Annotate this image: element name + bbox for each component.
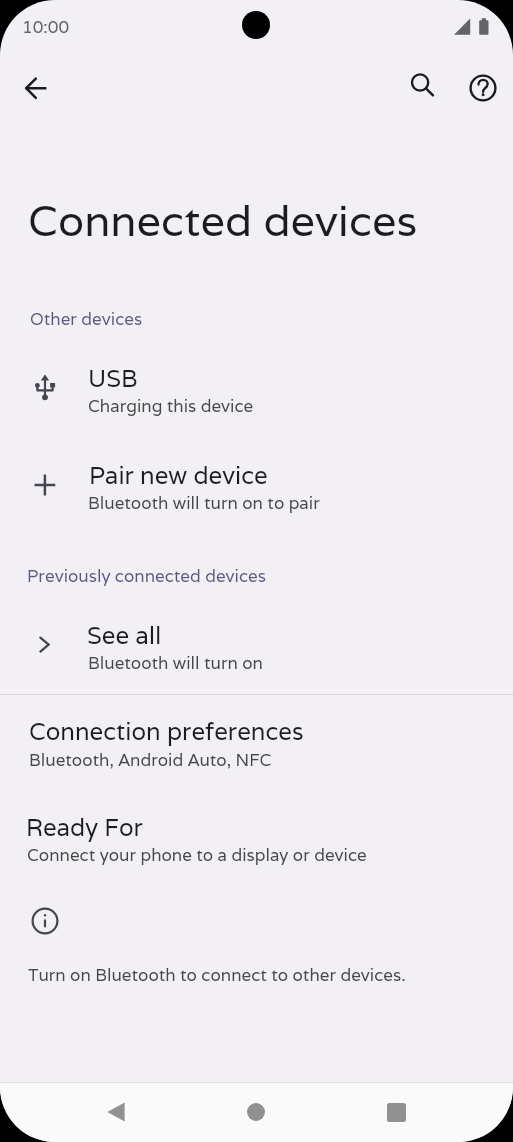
staticText: Ready For (26, 812, 143, 843)
staticText: Connection preferences (29, 716, 304, 747)
staticText: Connected devices (28, 192, 418, 248)
staticText: Charging this device (88, 395, 254, 417)
button[interactable]: Back (13, 64, 61, 112)
staticText: Bluetooth, Android Auto, NFC (29, 749, 272, 771)
button[interactable]: Search (398, 61, 446, 109)
staticText: Turn on Bluetooth to connect to other de… (28, 964, 406, 986)
button[interactable]: Back (92, 1088, 140, 1136)
button[interactable] (0, 609, 513, 679)
staticText: Pair new device (89, 460, 268, 491)
staticText: Bluetooth will turn on (88, 652, 263, 674)
staticText: Connect your phone to a display or devic… (27, 844, 367, 866)
staticText: USB (88, 363, 138, 394)
staticText: Bluetooth will turn on to pair (88, 492, 320, 514)
staticText: 10:00 (22, 16, 70, 38)
staticText: Other devices (30, 308, 143, 330)
button[interactable] (0, 352, 513, 422)
button[interactable]: Recent apps (372, 1088, 420, 1136)
button[interactable]: Help (459, 64, 507, 112)
staticText: See all (87, 620, 162, 651)
button[interactable]: Home (232, 1088, 280, 1136)
button[interactable] (0, 706, 513, 772)
button[interactable] (0, 803, 513, 869)
button[interactable] (0, 449, 513, 519)
staticText: Previously connected devices (27, 565, 266, 587)
